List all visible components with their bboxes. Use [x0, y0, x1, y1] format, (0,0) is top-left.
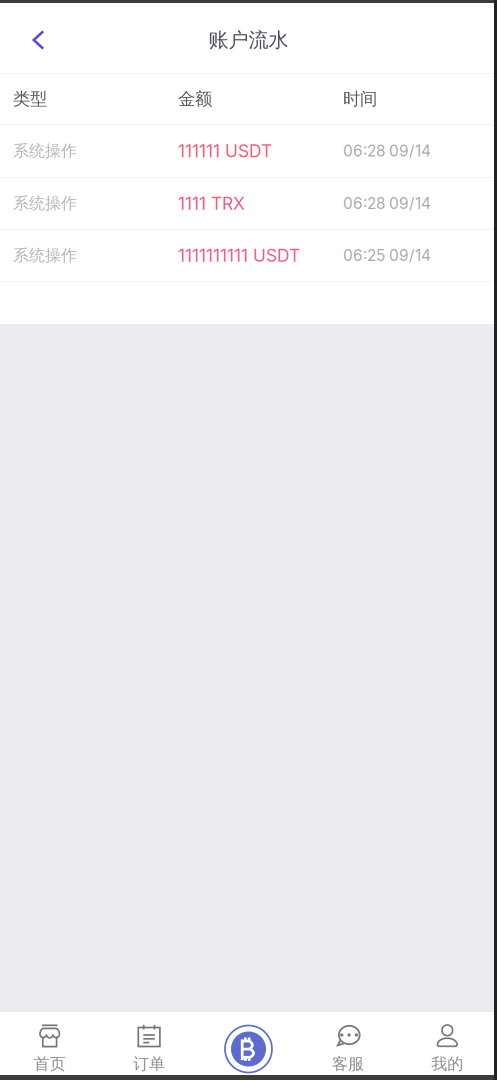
button[interactable]: 系统操作: [0, 125, 497, 177]
button[interactable]: Back: [9, 12, 67, 68]
staticText: 我的: [431, 1054, 463, 1074]
button[interactable]: 客服: [298, 1011, 398, 1075]
button[interactable]: 我的: [398, 1011, 497, 1075]
staticText: 1111 TRX: [178, 193, 245, 214]
staticText: 06:25 09/14: [343, 246, 431, 265]
staticText: 金额: [178, 88, 212, 110]
button[interactable]: 订单: [99, 1011, 199, 1075]
button[interactable]: 系统操作: [0, 178, 497, 229]
button[interactable]: Wallet: [225, 1025, 272, 1072]
button[interactable]: 首页: [0, 1011, 99, 1075]
staticText: 系统操作: [13, 245, 77, 266]
staticText: 06:28 09/14: [343, 194, 431, 213]
staticText: 1111111111 USDT: [178, 245, 300, 266]
staticText: 111111 USDT: [178, 140, 272, 161]
staticText: 系统操作: [13, 193, 77, 214]
staticText: 账户流水: [208, 27, 288, 53]
staticText: 客服: [332, 1054, 364, 1074]
button[interactable]: 系统操作: [0, 230, 497, 281]
staticText: 类型: [13, 88, 47, 110]
staticText: 首页: [34, 1054, 66, 1074]
staticText: 订单: [133, 1054, 165, 1074]
staticText: 系统操作: [13, 141, 77, 161]
staticText: 时间: [343, 88, 377, 110]
staticText: 06:28 09/14: [343, 142, 431, 160]
